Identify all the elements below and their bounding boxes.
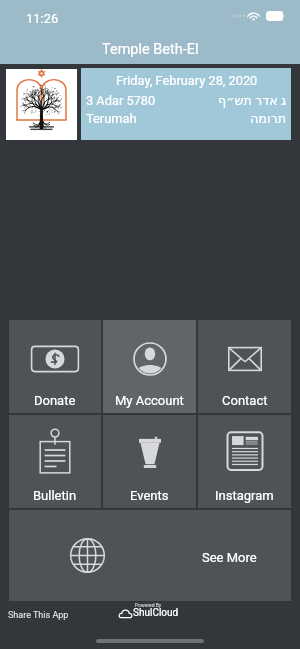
button[interactable]: Friday, February 28, 2020 [81,68,291,140]
staticText: Terumah [86,111,137,126]
button[interactable]: Events [103,415,196,508]
button[interactable]: Instagram [198,415,291,508]
staticText: Contact [222,393,268,408]
button[interactable]: Donate [9,320,101,413]
button[interactable]: Powered by ShulCloud [119,601,179,619]
button[interactable]: See More [9,510,291,601]
staticText: My Account [115,393,184,408]
staticText: תרומה [250,111,287,126]
staticText: 11:26 [26,11,59,26]
button[interactable]: Contact [198,320,291,413]
staticText: Donate [34,393,76,408]
staticText: See More [202,550,257,565]
button[interactable]: Bulletin [9,415,101,508]
staticText: Powered By [135,602,162,608]
button[interactable]: Temple Beth-El logo [6,69,77,140]
button[interactable]: My Account [103,320,196,413]
staticText: Instagram [215,488,274,503]
staticText: Temple Beth-El [102,41,199,58]
staticText: Friday, February 28, 2020 [116,73,258,88]
button[interactable]: Share This App [8,610,69,621]
staticText: 3 Adar 5780 [86,93,156,108]
staticText: ג אדר תש״ף [218,93,287,108]
staticText: Bulletin [33,488,77,503]
staticText: Events [130,488,169,503]
staticText: ShulCloud [133,607,179,619]
